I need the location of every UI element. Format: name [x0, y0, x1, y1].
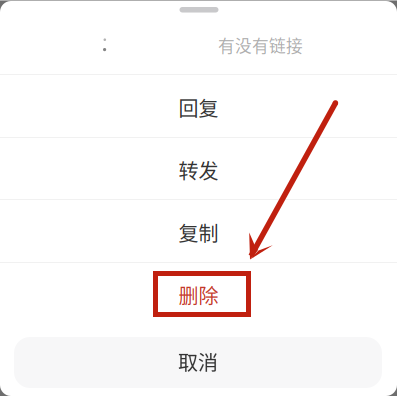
staticText: 回复 — [178, 93, 218, 122]
button[interactable]: 转发 — [0, 137, 397, 199]
button[interactable]: 回复 — [0, 74, 397, 137]
button[interactable]: 复制 — [0, 199, 397, 262]
button[interactable]: 删除 — [0, 262, 397, 324]
staticText: 有没有链接 — [218, 33, 303, 57]
staticText: 复制 — [178, 218, 218, 247]
staticText: 转发 — [178, 155, 218, 184]
staticText: 删除 — [178, 280, 218, 309]
staticText: 取消 — [178, 347, 218, 376]
button[interactable]: 取消 — [14, 337, 382, 388]
